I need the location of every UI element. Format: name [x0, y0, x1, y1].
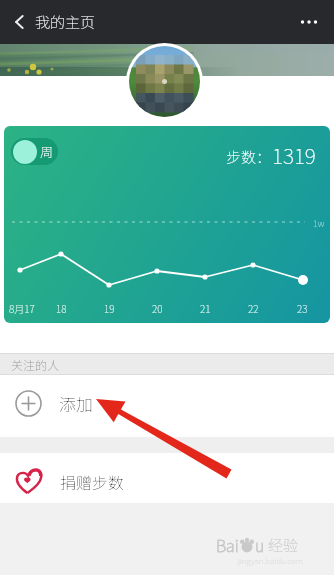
button[interactable] — [14, 10, 30, 34]
staticText: 关注的人 — [11, 356, 60, 373]
staticText: 添加 — [59, 391, 93, 416]
staticText: 1w — [313, 217, 325, 230]
staticText: 8月17 — [9, 301, 35, 315]
staticText: 22 — [248, 301, 259, 315]
button[interactable]: 周 — [11, 138, 58, 165]
button[interactable]: 捐赠步数 — [0, 453, 334, 503]
staticText: 18 — [56, 301, 67, 315]
staticText: 1319 — [272, 140, 316, 170]
staticText: 19 — [104, 301, 115, 315]
button[interactable]: 周 — [4, 126, 330, 323]
button[interactable] — [296, 8, 324, 36]
staticText: Bai — [216, 533, 239, 556]
button[interactable]: 添加 — [0, 375, 334, 437]
staticText: 周 — [40, 142, 54, 161]
staticText: 经验 — [268, 534, 299, 556]
staticText: 捐赠步数 — [60, 470, 125, 493]
staticText: 21 — [200, 301, 211, 315]
staticText: 20 — [152, 301, 163, 315]
staticText: jingyan.baidu.com — [238, 555, 303, 567]
staticText: u — [255, 533, 265, 556]
staticText: 我的主页 — [35, 11, 96, 33]
staticText: 23 — [297, 301, 308, 315]
staticText: 步数： — [226, 146, 272, 168]
